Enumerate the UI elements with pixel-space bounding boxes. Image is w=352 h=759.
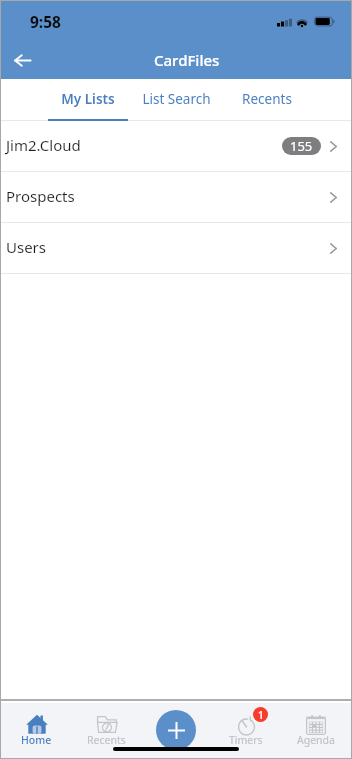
staticText: Prospects — [6, 186, 75, 206]
staticText: My Lists — [61, 90, 115, 108]
staticText: 9:58 — [30, 11, 61, 32]
staticText: Agenda — [297, 733, 335, 747]
button[interactable]: Recents — [71, 703, 141, 758]
staticText: Recents — [242, 90, 292, 108]
button[interactable]: Recents — [227, 79, 307, 121]
staticText: Users — [6, 237, 46, 257]
button[interactable]: 1 — [211, 703, 281, 758]
staticText: Home — [21, 733, 52, 747]
button[interactable]: Jim2.Cloud — [1, 121, 351, 171]
staticText: 1 — [258, 708, 264, 722]
staticText: CardFiles — [154, 50, 220, 70]
staticText: List Search — [142, 90, 211, 108]
staticText: Timers — [229, 733, 263, 747]
button[interactable]: Users — [1, 223, 351, 273]
button[interactable]: List Search — [136, 79, 216, 121]
staticText: 155 — [290, 137, 313, 155]
button[interactable]: Agenda — [281, 703, 351, 758]
button[interactable]: Prospects — [1, 172, 351, 222]
button[interactable]: Add — [156, 710, 196, 750]
button[interactable]: Home — [1, 703, 71, 758]
button[interactable]: My Lists — [48, 79, 128, 121]
staticText: Jim2.Cloud — [6, 135, 81, 155]
button[interactable]: Back — [4, 42, 40, 78]
staticText: Recents — [87, 733, 126, 747]
